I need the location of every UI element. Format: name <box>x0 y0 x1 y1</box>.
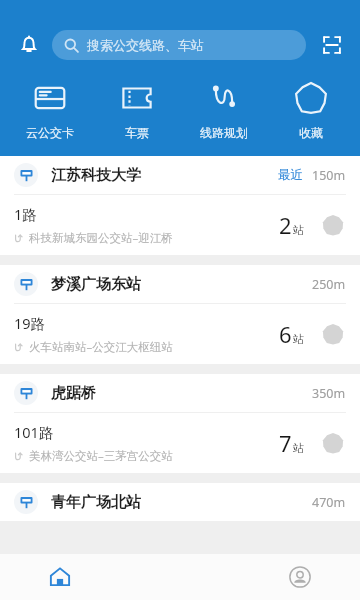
staticText: 车票 <box>125 125 149 140</box>
staticText: 虎踞桥 <box>51 384 96 403</box>
staticText: 250m <box>312 276 346 293</box>
staticText: 7 <box>279 428 292 458</box>
staticText: 150m <box>312 167 346 184</box>
staticText: 1路 <box>14 204 37 224</box>
staticText: 350m <box>312 385 346 402</box>
staticText: 19路 <box>14 313 46 333</box>
staticText: 2 <box>279 210 292 240</box>
button[interactable]: 江苏科技大学 <box>0 156 360 255</box>
button[interactable]: Profile <box>240 554 360 600</box>
button[interactable]: Favorite <box>318 319 348 349</box>
staticText: 6 <box>279 319 292 349</box>
staticText: 站 <box>293 332 304 346</box>
button[interactable]: 收藏 <box>267 78 354 142</box>
staticText: 科技新城东园公交站–迎江桥 <box>29 230 173 246</box>
button[interactable]: 线路规划 <box>180 78 267 142</box>
staticText: 收藏 <box>299 125 323 140</box>
staticText: 站 <box>293 441 304 455</box>
button[interactable]: 青年广场北站 <box>0 483 360 521</box>
staticText: 站 <box>293 223 304 237</box>
staticText: 101路 <box>14 422 54 442</box>
staticText: 火车站南站–公交江大枢纽站 <box>29 339 173 355</box>
staticText: 美林湾公交站–三茅宫公交站 <box>29 448 173 464</box>
button[interactable]: Scan <box>316 29 348 61</box>
button[interactable]: 搜索公交线路、车站 <box>52 30 306 60</box>
staticText: 470m <box>312 494 346 511</box>
button[interactable]: 车票 <box>93 78 180 142</box>
button[interactable]: 虎踞桥 <box>0 374 360 473</box>
staticText: 江苏科技大学 <box>51 166 141 185</box>
button[interactable]: 梦溪广场东站 <box>0 265 360 364</box>
staticText: 最近 <box>278 167 303 183</box>
staticText: 搜索公交线路、车站 <box>87 37 204 53</box>
button[interactable]: Favorite <box>318 428 348 458</box>
staticText: 线路规划 <box>200 125 248 140</box>
staticText: 云公交卡 <box>26 125 74 140</box>
button[interactable]: Notifications <box>12 28 46 62</box>
staticText: 梦溪广场东站 <box>51 275 141 294</box>
button[interactable]: Favorite <box>318 210 348 240</box>
button[interactable]: 云公交卡 <box>6 78 93 142</box>
staticText: 青年广场北站 <box>51 493 141 512</box>
button[interactable]: Home <box>0 554 120 600</box>
